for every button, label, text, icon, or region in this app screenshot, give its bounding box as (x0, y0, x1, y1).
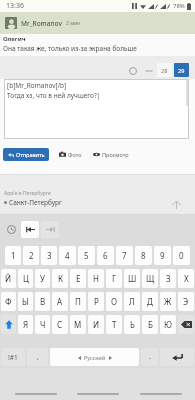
button[interactable]: 3 (41, 246, 57, 265)
button[interactable]: Х (178, 269, 194, 288)
button[interactable]: Avatar (5, 17, 17, 29)
staticText: Щ (146, 273, 155, 284)
button[interactable]: Я (18, 315, 33, 334)
button[interactable]: Фото (57, 149, 84, 160)
button[interactable]: Back (133, 371, 188, 397)
staticText: 9 (160, 250, 165, 261)
staticText: Ю (164, 319, 172, 330)
button[interactable]: Ю (160, 315, 176, 334)
staticText: 78% (173, 2, 185, 10)
button[interactable]: Ф (1, 292, 16, 311)
button[interactable]: Ж (160, 292, 176, 311)
staticText: Фото (68, 151, 82, 158)
button[interactable]: 9 (154, 246, 171, 265)
staticText: Г (112, 273, 117, 284)
button[interactable]: 8 (135, 246, 152, 265)
button[interactable]: Recents (8, 371, 63, 397)
button[interactable]: Backspace (178, 315, 194, 334)
staticText: 29 (178, 67, 185, 74)
button[interactable]: Просмотр (91, 149, 131, 160)
button[interactable]: 4 (59, 246, 76, 265)
staticText: Я (23, 319, 29, 330)
staticText: Д (147, 296, 153, 307)
staticText: Русский (84, 354, 106, 361)
button[interactable]: У (35, 269, 50, 288)
staticText: 13:36 (6, 1, 24, 11)
staticText: Ь (130, 319, 135, 330)
button[interactable]: Щ (142, 269, 158, 288)
button[interactable]: Р (88, 292, 104, 311)
button[interactable]: 0 (173, 246, 190, 265)
button[interactable]: Enter (160, 348, 194, 366)
button[interactable]: Ш (124, 269, 140, 288)
staticText: Санкт-Петербург (9, 198, 62, 207)
staticText: Н (93, 273, 99, 284)
staticText: Отправить (16, 151, 45, 158)
button[interactable]: В (35, 292, 50, 311)
button[interactable]: Й (1, 269, 16, 288)
button[interactable]: 29 (174, 63, 189, 77)
button[interactable]: 7 (116, 246, 133, 265)
button[interactable]: . (141, 348, 158, 366)
button[interactable]: Scroll to top (169, 197, 183, 211)
button[interactable]: И (88, 315, 104, 334)
staticText: Она такая же, только из-за экрана больше (3, 44, 137, 53)
button[interactable]: 1 (5, 246, 21, 265)
button[interactable]: Т (106, 315, 122, 334)
staticText: Просмотр (102, 151, 129, 158)
button[interactable]: П (70, 292, 86, 311)
button[interactable]: Refresh (125, 63, 140, 78)
button[interactable]: Н (88, 269, 104, 288)
staticText: 28 (161, 67, 168, 74)
button[interactable]: !#1 (1, 348, 25, 366)
button[interactable]: Л (124, 292, 140, 311)
button[interactable]: Emoji (3, 221, 20, 238)
button[interactable]: 5 (78, 246, 95, 265)
staticText: А (57, 296, 63, 307)
staticText: У (40, 273, 45, 284)
staticText: Apple в Петербурге (4, 190, 51, 197)
staticText: Mr_Romanov (21, 19, 62, 28)
staticText: И (93, 319, 100, 330)
button[interactable]: Ч (35, 315, 50, 334)
button[interactable]: 28 (157, 63, 172, 77)
staticText: Олегич (3, 35, 26, 43)
button[interactable]: Home (70, 371, 125, 397)
button[interactable]: О (106, 292, 122, 311)
button[interactable]: Ц (18, 269, 33, 288)
button[interactable]: С (52, 315, 68, 334)
staticText: 2 мин (66, 20, 81, 27)
button[interactable]: 2 (23, 246, 39, 265)
button[interactable]: М (70, 315, 86, 334)
staticText: Ф (5, 296, 12, 307)
button[interactable]: , (27, 348, 48, 366)
button[interactable]: А (52, 292, 68, 311)
staticText: Ч (40, 319, 46, 330)
button[interactable]: К (52, 269, 68, 288)
button[interactable]: Previous suggestion (21, 221, 39, 238)
staticText: Тогда хз, что в ней лучшего?| (7, 91, 101, 100)
button[interactable]: Русский (50, 348, 139, 366)
button[interactable]: Е (70, 269, 86, 288)
staticText: Ы (22, 296, 29, 307)
staticText: З (166, 273, 171, 284)
staticText: !#1 (8, 353, 18, 362)
button[interactable]: Э (178, 292, 194, 311)
staticText: Т (112, 319, 117, 330)
staticText: С (57, 319, 63, 330)
button[interactable]: Next suggestion (41, 221, 59, 238)
button[interactable]: 6 (97, 246, 114, 265)
button[interactable]: Отправить (3, 148, 49, 161)
staticText: Э (183, 296, 189, 307)
button[interactable]: Б (142, 315, 158, 334)
staticText: 5 (84, 250, 89, 261)
button[interactable]: Shift (1, 315, 16, 334)
staticText: Х (184, 273, 189, 284)
staticText: , (37, 352, 39, 362)
button[interactable]: Д (142, 292, 158, 311)
button[interactable]: З (160, 269, 176, 288)
button[interactable]: Previous page (141, 63, 156, 78)
button[interactable]: Г (106, 269, 122, 288)
button[interactable]: Ы (18, 292, 33, 311)
button[interactable]: Ь (124, 315, 140, 334)
